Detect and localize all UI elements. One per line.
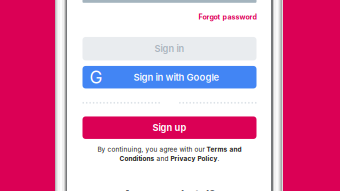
button[interactable]: Sign up xyxy=(82,116,256,139)
staticText: Sign in xyxy=(154,43,184,54)
staticText: Sign up xyxy=(152,122,186,133)
button[interactable]: G xyxy=(82,66,256,88)
staticText: G xyxy=(89,67,102,88)
button[interactable]: Sign in xyxy=(82,37,256,60)
button[interactable]: Forgot password xyxy=(82,10,256,23)
staticText: Are you a hotel? xyxy=(123,187,216,191)
staticText: Conditions and Privacy Policy. xyxy=(119,155,219,162)
staticText: Sign in with Google xyxy=(133,71,219,83)
staticText: By continuing, you agree with our Terms … xyxy=(97,146,241,153)
staticText: Forgot password xyxy=(198,13,256,21)
